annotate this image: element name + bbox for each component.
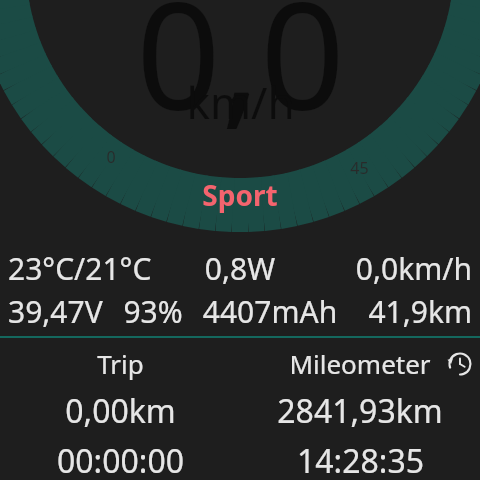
staticText: 0 [106, 146, 116, 168]
staticText: 00:00:00 [57, 439, 184, 480]
staticText: 39,47V [8, 291, 112, 332]
staticText: 14:28:35 [297, 439, 424, 480]
button[interactable]: Trip [0, 346, 240, 480]
staticText: 93% [112, 291, 194, 332]
staticText: 23°C/21°C [8, 248, 171, 289]
staticText: 0,8W [171, 248, 309, 289]
button[interactable]: Trip history [446, 350, 474, 378]
staticText: km/h [186, 72, 295, 132]
staticText: 0,0km/h [309, 248, 472, 289]
staticText: Trip [97, 346, 144, 381]
staticText: Sport [202, 176, 278, 214]
staticText: Mileometer [289, 346, 431, 381]
staticText: 0,00km [65, 389, 176, 433]
staticText: 41,9km [346, 291, 472, 332]
staticText: 0,0 [136, 0, 345, 154]
staticText: 2841,93km [277, 389, 443, 433]
staticText: 45 [350, 157, 369, 179]
button[interactable]: Sport [0, 176, 480, 214]
button[interactable]: Mileometer [240, 346, 480, 480]
staticText: 4407mAh [194, 291, 346, 332]
